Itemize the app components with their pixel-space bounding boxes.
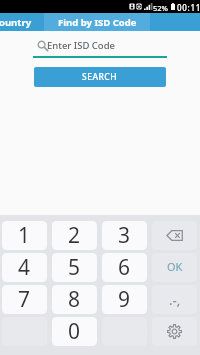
button[interactable]: 3 (102, 221, 147, 250)
button[interactable]: Backspace (152, 221, 197, 250)
staticText: 8 (68, 285, 81, 314)
staticText: 5 (68, 253, 81, 282)
staticText: 1 (18, 221, 31, 250)
staticText: 52% (153, 3, 168, 13)
staticText: 9 (118, 285, 131, 314)
button[interactable]: 1 (2, 221, 47, 250)
button[interactable]: 2 (52, 221, 97, 250)
staticText: 00:11 (177, 2, 200, 13)
staticText: 0 (68, 317, 81, 346)
button[interactable]: 9 (102, 285, 147, 314)
button[interactable]: SEARCH (34, 67, 166, 87)
button[interactable]: 4 (2, 253, 47, 282)
staticText: 3 (118, 221, 131, 250)
button[interactable]: 6 (102, 253, 147, 282)
button[interactable]: Punctuation (152, 285, 197, 314)
button[interactable]: Keyboard settings (152, 317, 197, 346)
button[interactable]: 0 (52, 317, 97, 346)
button[interactable]: 7 (2, 285, 47, 314)
staticText: SEARCH (82, 71, 118, 83)
staticText: Enter ISD Code (47, 39, 116, 52)
staticText: 2 (68, 221, 81, 250)
staticText: ountry (0, 16, 32, 29)
button[interactable]: OK (152, 253, 197, 282)
button[interactable]: 8 (52, 285, 97, 314)
staticText: Find by ISD Code (58, 16, 137, 29)
staticText: 4 (18, 253, 31, 282)
staticText: OK (167, 259, 183, 274)
staticText: 7 (18, 285, 31, 314)
button[interactable]: 5 (52, 253, 97, 282)
button[interactable]: ountry (0, 13, 44, 31)
button[interactable]: Find by ISD Code (44, 13, 150, 31)
staticText: .-, (169, 291, 181, 309)
staticText: 6 (118, 253, 131, 282)
